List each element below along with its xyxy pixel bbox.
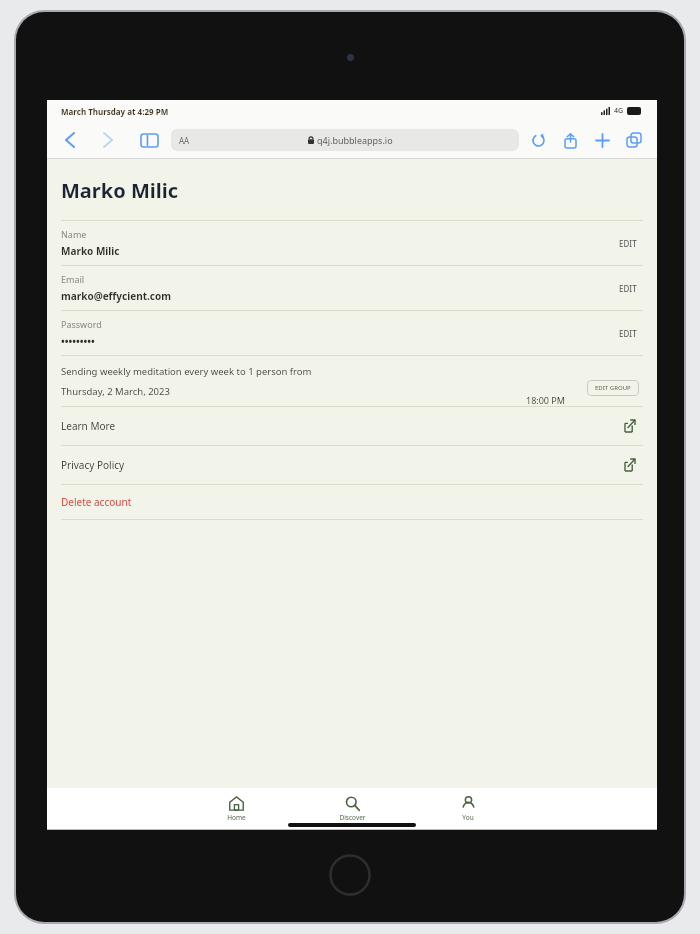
button[interactable]: Tabs <box>623 129 645 151</box>
staticText: EDIT <box>619 328 637 339</box>
staticText: Sending weekly meditation every week to … <box>61 365 312 378</box>
staticText: 4G <box>614 106 624 116</box>
staticText: Home <box>227 813 246 822</box>
button[interactable]: Privacy Policy <box>61 446 643 484</box>
staticText: Thursday, 2 March, 2023 <box>61 385 170 398</box>
staticText: Name <box>61 228 87 240</box>
staticText: 18:00 PM <box>526 394 565 406</box>
staticText: marko@effycient.com <box>61 289 171 303</box>
staticText: Marko Milic <box>61 244 120 258</box>
button[interactable]: EDIT GROUP <box>587 380 639 396</box>
staticText: Password <box>61 318 102 330</box>
staticText: Privacy Policy <box>61 458 125 472</box>
staticText: Marko Milic <box>61 177 178 204</box>
button[interactable]: AA <box>171 129 519 151</box>
button[interactable]: Sidebar <box>137 128 161 152</box>
button[interactable]: Reload <box>527 129 549 151</box>
staticText: Learn More <box>61 419 116 433</box>
staticText: EDIT <box>619 283 637 294</box>
staticText: Email <box>61 273 85 285</box>
button[interactable]: Forward <box>97 129 119 151</box>
staticText: March Thursday at 4:29 PM <box>61 106 169 117</box>
button[interactable]: Learn More <box>61 407 643 445</box>
button[interactable]: Password <box>61 311 643 355</box>
button[interactable]: Home <box>204 796 268 822</box>
button[interactable]: Email <box>61 266 643 310</box>
staticText: q4j.bubbleapps.io <box>317 134 393 146</box>
button[interactable]: New tab <box>591 129 613 151</box>
staticText: EDIT GROUP <box>595 384 631 392</box>
staticText: AA <box>179 135 190 146</box>
button[interactable]: Discover <box>320 796 384 822</box>
button[interactable]: Name <box>61 221 643 265</box>
button[interactable]: Sending weekly meditation every week to … <box>61 356 643 406</box>
staticText: Discover <box>339 813 366 822</box>
staticText: EDIT <box>619 238 637 249</box>
button[interactable]: Delete account <box>61 485 643 519</box>
button[interactable]: Share <box>559 129 581 151</box>
button[interactable]: Back <box>59 129 81 151</box>
staticText: ••••••••• <box>61 334 95 348</box>
staticText: You <box>462 813 474 822</box>
staticText: Delete account <box>61 495 132 509</box>
button[interactable]: You <box>436 796 500 822</box>
